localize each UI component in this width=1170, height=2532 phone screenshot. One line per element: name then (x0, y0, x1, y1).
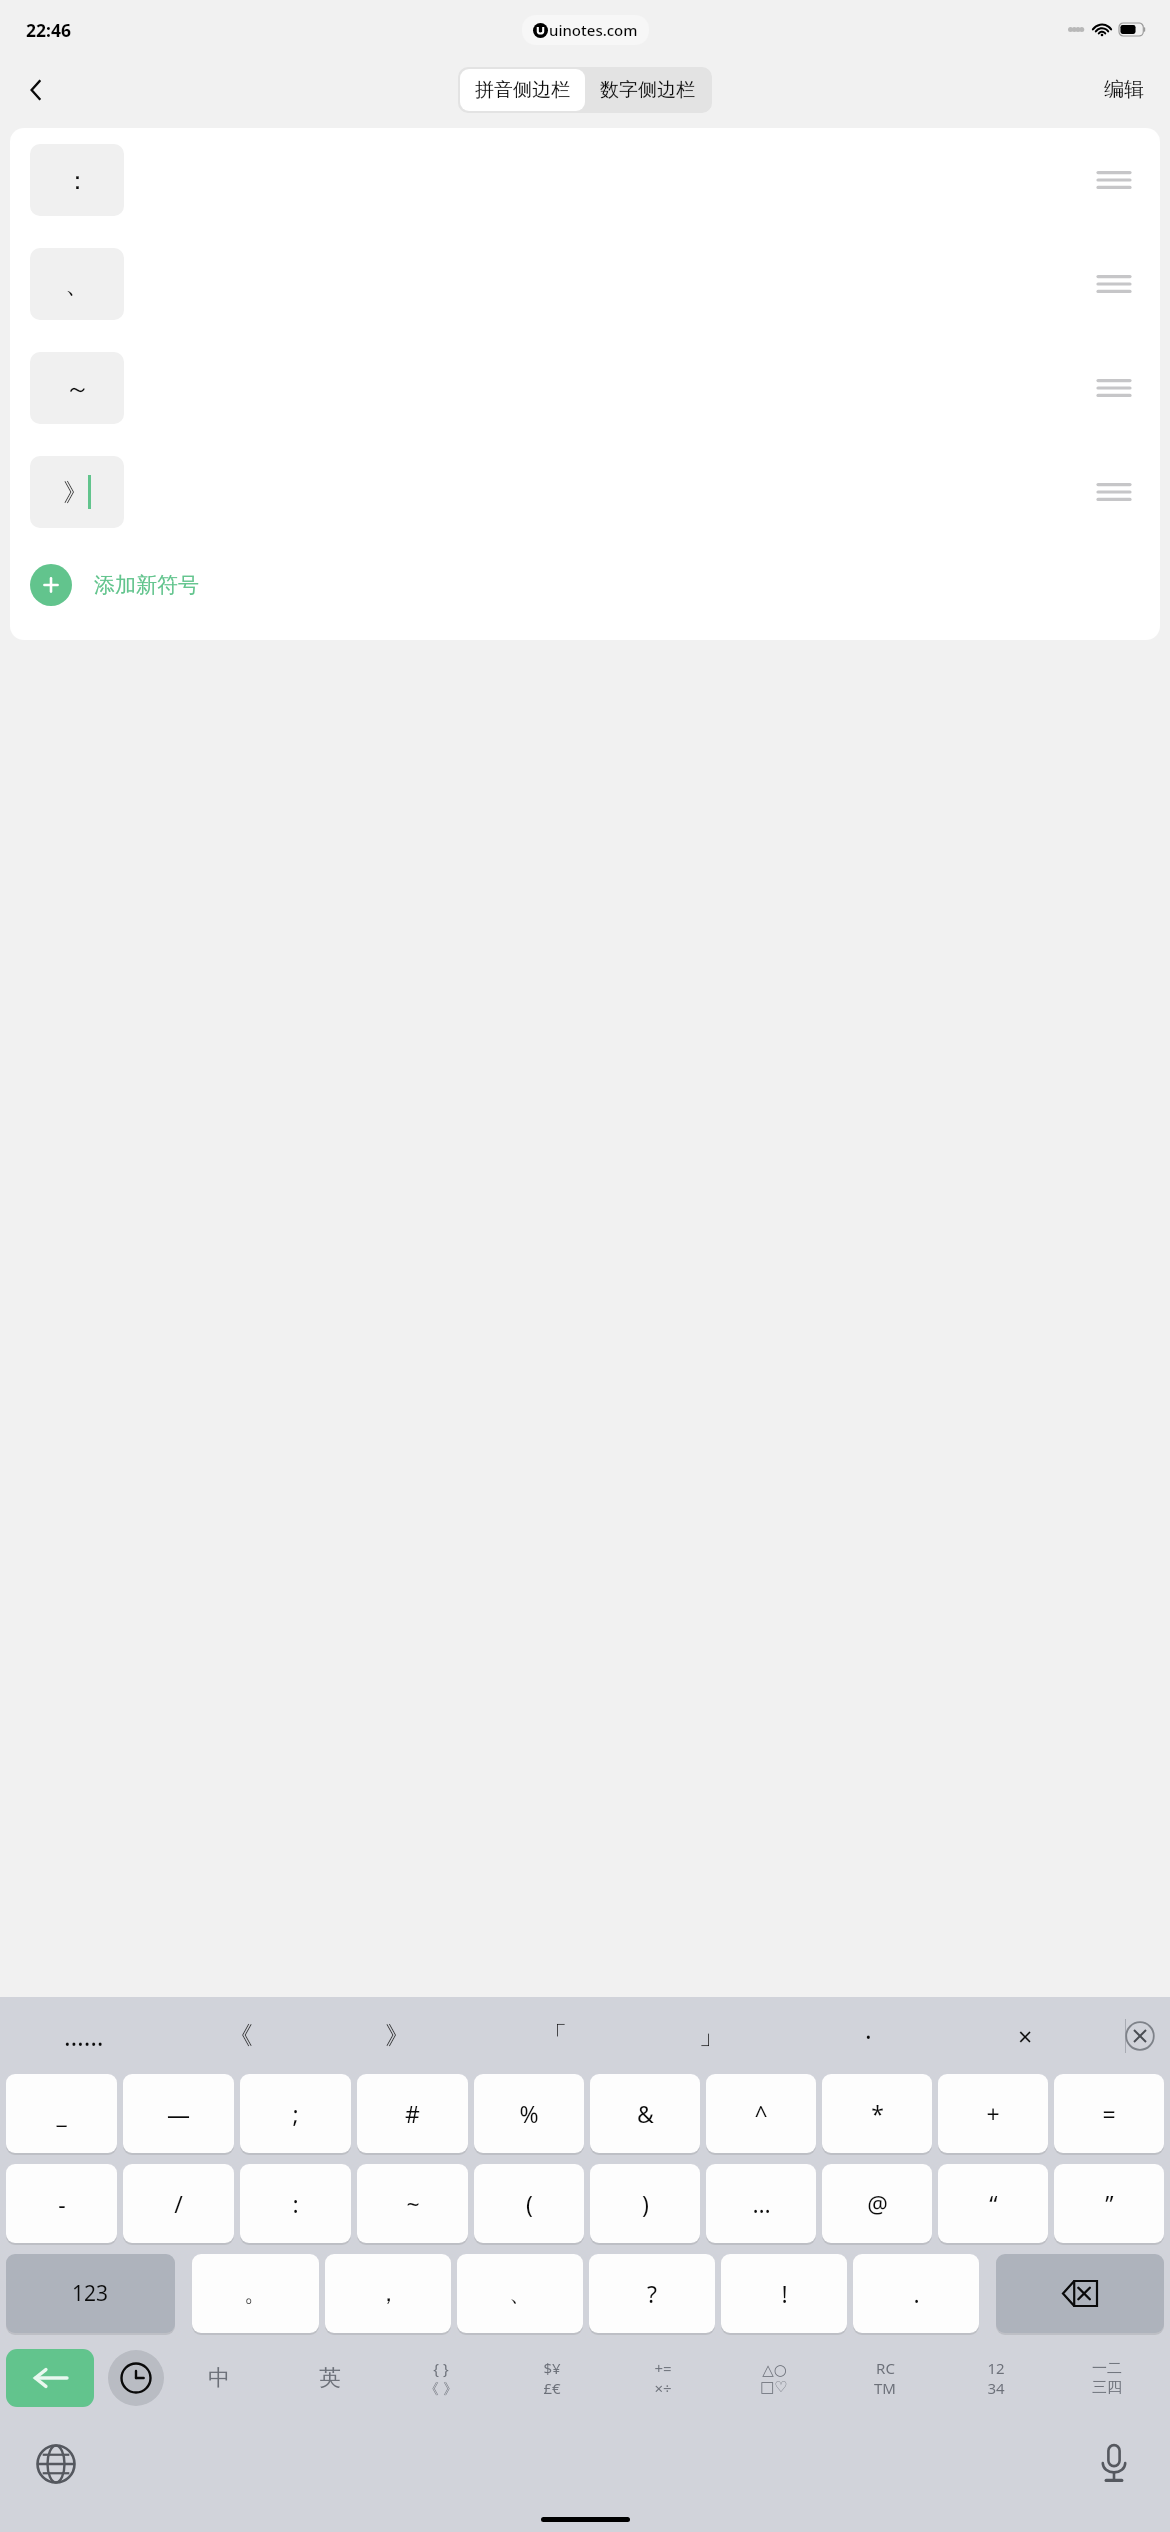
staticText: — (167, 2098, 190, 2129)
button[interactable]: Reorder (1088, 158, 1140, 202)
button[interactable]: ! (721, 2254, 847, 2333)
staticText: : (292, 2188, 299, 2219)
button[interactable]: : (240, 2164, 351, 2243)
button[interactable]: 12 (940, 2347, 1051, 2409)
button[interactable]: += (607, 2347, 718, 2409)
staticText: ～ (65, 373, 90, 404)
button[interactable]: 》 (319, 1997, 476, 2074)
button[interactable]: ? (589, 2254, 715, 2333)
button[interactable]: Close (1118, 2014, 1162, 2058)
button[interactable]: - (6, 2164, 117, 2243)
button[interactable]: Reorder (1088, 262, 1140, 306)
button[interactable]: ; (240, 2074, 351, 2153)
button[interactable]: “ (938, 2164, 1048, 2243)
staticText: % (519, 2098, 539, 2129)
staticText: * (871, 2098, 884, 2129)
staticText: uinotes.com (549, 20, 638, 40)
staticText: 三四 (1092, 2378, 1122, 2397)
button[interactable]: 数字侧边栏 (585, 69, 710, 111)
staticText: □♡ (760, 2378, 788, 2395)
button[interactable]: ～ (10, 336, 1160, 440)
button[interactable]: _ (6, 2074, 117, 2153)
staticText: 》 (385, 2020, 410, 2051)
staticText: 123 (72, 2279, 109, 2308)
button[interactable]: / (123, 2164, 234, 2243)
button[interactable]: @ (822, 2164, 932, 2243)
button[interactable]: RC (829, 2347, 940, 2409)
button[interactable]: 。 (192, 2254, 319, 2333)
staticText: ! (781, 2278, 788, 2309)
staticText: 、 (509, 2279, 532, 2308)
staticText: _ (56, 2098, 67, 2129)
button[interactable]: . (853, 2254, 979, 2333)
button[interactable]: × (947, 1997, 1104, 2074)
button[interactable]: 》 (10, 440, 1160, 544)
button[interactable]: 一二 (1051, 2347, 1162, 2409)
button[interactable]: 《 (162, 1997, 319, 2074)
button[interactable]: Recent (108, 2350, 164, 2406)
staticText: - (58, 2188, 66, 2219)
staticText: / (174, 2188, 183, 2219)
staticText: RC (876, 2358, 895, 2378)
staticText: ^ (754, 2098, 768, 2129)
staticText: 《 (228, 2020, 253, 2051)
staticText: 「 (542, 2020, 567, 2051)
staticText: 22:46 (26, 18, 71, 42)
button[interactable]: 、 (457, 2254, 583, 2333)
staticText: …… (64, 2019, 104, 2053)
button[interactable]: Voice input (1086, 2436, 1142, 2492)
staticText: £€ (543, 2378, 561, 2398)
button[interactable]: Back (14, 68, 58, 112)
button[interactable]: 「 (476, 1997, 633, 2074)
staticText: + (986, 2098, 1000, 2129)
button[interactable]: ( (474, 2164, 584, 2243)
staticText: 数字侧边栏 (600, 78, 695, 102)
staticText: 中 (208, 2364, 230, 2392)
button[interactable]: 拼音侧边栏 (460, 69, 585, 111)
staticText: ( (526, 2188, 533, 2219)
button[interactable]: # (357, 2074, 468, 2153)
button[interactable]: ~ (357, 2164, 468, 2243)
button[interactable]: Return (6, 2349, 94, 2407)
button[interactable]: 123 (6, 2254, 175, 2333)
staticText: 《 》 (424, 2378, 458, 2398)
staticText: 编辑 (1104, 77, 1144, 102)
staticText: 12 (987, 2358, 1005, 2378)
button[interactable]: % (474, 2074, 584, 2153)
button[interactable]: 」 (633, 1997, 790, 2074)
button[interactable]: … (706, 2164, 816, 2243)
staticText: … (752, 2188, 771, 2219)
button[interactable]: 、 (10, 232, 1160, 336)
button[interactable]: △○ (718, 2347, 829, 2409)
staticText: = (1102, 2098, 1116, 2129)
button[interactable]: — (123, 2074, 234, 2153)
button[interactable]: ^ (706, 2074, 816, 2153)
button[interactable]: ) (590, 2164, 700, 2243)
button[interactable]: ” (1054, 2164, 1164, 2243)
button[interactable]: 英 (274, 2347, 385, 2409)
button[interactable]: 中 (164, 2347, 274, 2409)
button[interactable]: = (1054, 2074, 1164, 2153)
button[interactable]: 编辑 (1096, 71, 1152, 108)
button[interactable]: $¥ (496, 2347, 607, 2409)
staticText: 英 (319, 2364, 341, 2392)
button[interactable]: { } (385, 2347, 496, 2409)
button[interactable]: Reorder (1088, 366, 1140, 410)
staticText: · (865, 2019, 872, 2053)
staticText: += (654, 2358, 672, 2378)
button[interactable]: Delete (996, 2254, 1164, 2333)
staticText: . (913, 2278, 920, 2309)
button[interactable]: …… (6, 1997, 162, 2074)
button[interactable]: Switch keyboard (28, 2436, 84, 2492)
button[interactable]: · (790, 1997, 947, 2074)
staticText: { } (433, 2358, 449, 2378)
button[interactable]: * (822, 2074, 932, 2153)
button[interactable]: Reorder (1088, 470, 1140, 514)
button[interactable]: & (590, 2074, 700, 2153)
button[interactable]: 添加新符号 (10, 544, 1160, 626)
staticText: 」 (699, 2020, 724, 2051)
staticText: ? (647, 2278, 657, 2309)
button[interactable]: ， (325, 2254, 451, 2333)
button[interactable]: ： (10, 128, 1160, 232)
button[interactable]: + (938, 2074, 1048, 2153)
